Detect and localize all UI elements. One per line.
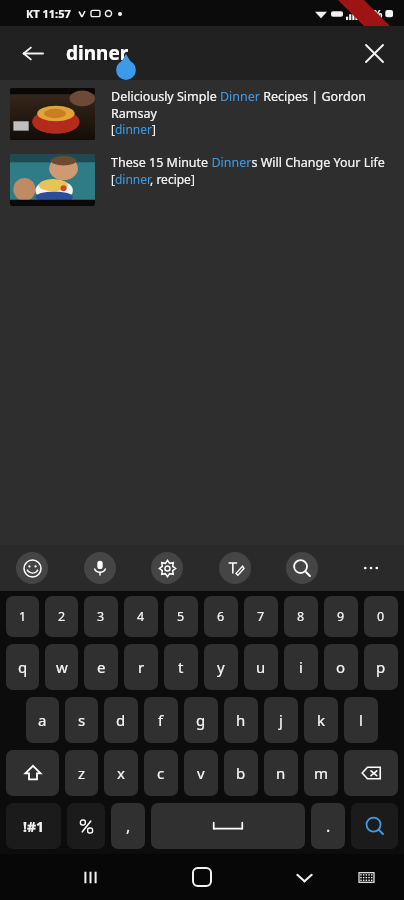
button[interactable]: h [224, 697, 258, 743]
button[interactable]: 1 [6, 596, 39, 637]
staticText: f [158, 710, 164, 730]
button[interactable]: x [104, 750, 138, 796]
staticText: These 15 Minute Dinners Will Change Your… [111, 154, 385, 171]
staticText: s [78, 710, 86, 730]
button[interactable]: 8 [284, 596, 318, 637]
staticText: 0 [377, 608, 385, 625]
staticText: 4 [137, 608, 145, 625]
button[interactable]: Clear [352, 31, 396, 75]
button[interactable]: p [364, 644, 398, 690]
button[interactable]: n [264, 750, 298, 796]
staticText: m [314, 763, 329, 783]
button[interactable]: Comma [111, 803, 145, 849]
button[interactable]: Search [286, 552, 318, 584]
staticText: 7 [257, 608, 265, 625]
staticText: c [157, 763, 165, 783]
staticText: , [126, 815, 131, 837]
button[interactable]: r [124, 644, 158, 690]
staticText: q [18, 657, 28, 677]
button[interactable]: Handwriting [219, 552, 251, 584]
button[interactable]: 9 [324, 596, 358, 637]
staticText: v [197, 763, 205, 783]
staticText: 8 [297, 608, 305, 625]
button[interactable]: Symbols [6, 803, 61, 849]
button[interactable]: Hide keyboard [282, 855, 326, 899]
staticText: l [359, 710, 363, 730]
button[interactable]: j [264, 697, 298, 743]
staticText: k [317, 710, 326, 730]
button[interactable]: Settings [151, 552, 183, 584]
staticText: t [178, 657, 184, 677]
button[interactable]: Emoji sticker [67, 803, 105, 849]
button[interactable]: v [184, 750, 218, 796]
staticText: [dinner, recipe] [111, 171, 195, 187]
button[interactable]: 6 [204, 596, 238, 637]
button[interactable]: y [204, 644, 238, 690]
button[interactable]: Keyboard layout [346, 857, 386, 897]
staticText: 2 [58, 608, 66, 625]
button[interactable]: Search [351, 803, 398, 849]
button[interactable]: Backspace [344, 750, 398, 796]
staticText: n [276, 763, 286, 783]
staticText: r [138, 657, 145, 677]
staticText: [dinner] [111, 121, 156, 137]
button[interactable]: u [244, 644, 278, 690]
button[interactable]: Recents [68, 855, 112, 899]
staticText: j [279, 710, 283, 730]
staticText: KT 11:57 [26, 6, 71, 21]
button[interactable]: 2 [45, 596, 78, 637]
staticText: . [326, 815, 331, 837]
staticText: x [117, 763, 125, 783]
button[interactable]: c [144, 750, 178, 796]
button[interactable]: dinner [66, 26, 129, 80]
button[interactable]: o [324, 644, 358, 690]
button[interactable]: b [224, 750, 258, 796]
staticText: e [97, 657, 106, 677]
staticText: 64% [360, 6, 383, 21]
button[interactable]: Shift [6, 750, 59, 796]
staticText: a [38, 710, 47, 730]
staticText: g [196, 710, 206, 730]
staticText: Deliciously Simple Dinner Recipes | Gord… [111, 88, 392, 121]
button[interactable]: 3 [84, 596, 118, 637]
button[interactable]: f [144, 697, 178, 743]
button[interactable]: q [6, 644, 39, 690]
button[interactable]: Period [311, 803, 345, 849]
button[interactable]: 0 [364, 596, 398, 637]
staticText: o [336, 657, 346, 677]
button[interactable]: These 15 Minute Dinners Will Change Your… [0, 140, 404, 206]
button[interactable]: Back [10, 31, 54, 75]
button[interactable]: g [184, 697, 218, 743]
button[interactable]: z [65, 750, 98, 796]
staticText: !#1 [23, 817, 44, 836]
button[interactable]: k [304, 697, 338, 743]
staticText: y [217, 657, 225, 677]
button[interactable]: 4 [124, 596, 158, 637]
button[interactable]: 7 [244, 596, 278, 637]
staticText: b [236, 763, 246, 783]
button[interactable]: Home [180, 855, 224, 899]
staticText: 5 [177, 608, 185, 625]
staticText: z [78, 763, 86, 783]
button[interactable]: w [45, 644, 78, 690]
button[interactable]: Voice input [84, 552, 116, 584]
button[interactable]: m [304, 750, 338, 796]
button[interactable]: a [26, 697, 59, 743]
staticText: 9 [337, 608, 345, 625]
button[interactable]: 5 [164, 596, 198, 637]
button[interactable]: Deliciously Simple Dinner Recipes | Gord… [0, 80, 404, 140]
button[interactable]: More options [354, 551, 388, 585]
staticText: 6 [217, 608, 225, 625]
staticText: i [299, 657, 303, 677]
staticText: dinner [66, 40, 129, 66]
staticText: h [236, 710, 246, 730]
button[interactable]: l [344, 697, 378, 743]
button[interactable]: e [84, 644, 118, 690]
button[interactable]: t [164, 644, 198, 690]
button[interactable]: s [65, 697, 98, 743]
button[interactable]: Emoji [16, 552, 48, 584]
staticText: u [256, 657, 266, 677]
button[interactable]: i [284, 644, 318, 690]
button[interactable]: d [104, 697, 138, 743]
button[interactable]: Space [151, 803, 305, 849]
